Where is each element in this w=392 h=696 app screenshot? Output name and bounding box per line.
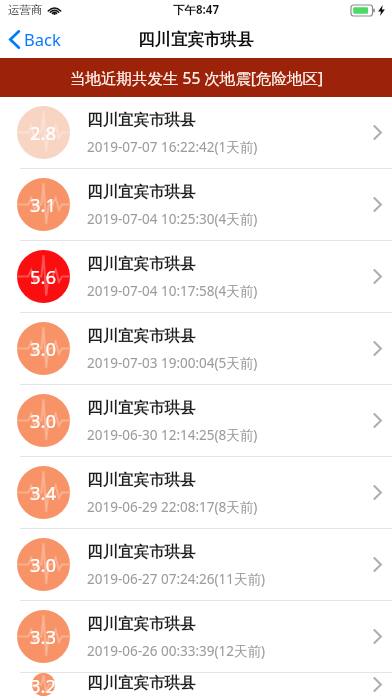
staticText: 2019-07-04 10:25:30(4天前)	[87, 210, 258, 228]
other: 查看详情	[362, 269, 392, 284]
staticText: Back	[24, 28, 61, 50]
staticText: 四川宜宾市珙县	[87, 182, 196, 202]
other: 查看详情	[362, 125, 392, 140]
staticText: 当地近期共发生 55 次地震[危险地区]	[70, 67, 323, 88]
staticText: 下午8:47	[173, 2, 219, 18]
staticText: 2.8	[30, 120, 57, 145]
staticText: 5.6	[30, 264, 57, 289]
other: 查看详情	[362, 629, 392, 644]
staticText: 四川宜宾市珙县	[138, 29, 254, 50]
staticText: 四川宜宾市珙县	[87, 673, 196, 693]
staticText: 四川宜宾市珙县	[87, 542, 196, 562]
staticText: 四川宜宾市珙县	[87, 398, 196, 418]
staticText: 3.0	[30, 336, 57, 361]
other: 查看详情	[362, 677, 392, 692]
staticText: 2019-07-03 19:00:04(5天前)	[87, 354, 258, 372]
staticText: 四川宜宾市珙县	[87, 326, 196, 346]
button[interactable]: 3.2	[0, 673, 392, 696]
other: 查看详情	[362, 485, 392, 500]
staticText: 3.3	[30, 624, 57, 649]
staticText: 四川宜宾市珙县	[87, 254, 196, 274]
staticText: 运营商	[8, 3, 43, 17]
button[interactable]: 3.1	[0, 169, 392, 241]
staticText: 2019-06-27 07:24:26(11天前)	[87, 570, 266, 588]
staticText: 四川宜宾市珙县	[87, 470, 196, 490]
button[interactable]: 2.8	[0, 97, 392, 169]
staticText: 3.4	[30, 480, 57, 505]
staticText: 2019-06-26 00:33:39(12天前)	[87, 642, 266, 660]
staticText: 3.0	[30, 552, 57, 577]
staticText: 四川宜宾市珙县	[87, 110, 196, 130]
other: 查看详情	[362, 341, 392, 356]
staticText: 2019-07-04 10:17:58(4天前)	[87, 282, 258, 300]
button[interactable]: Back	[0, 23, 73, 55]
button[interactable]: 3.3	[0, 601, 392, 673]
staticText: 3.1	[30, 192, 57, 217]
staticText: 3.2	[30, 673, 57, 696]
other: 查看详情	[362, 557, 392, 572]
button[interactable]: 3.4	[0, 457, 392, 529]
staticText: 2019-07-07 16:22:42(1天前)	[87, 138, 258, 156]
other: 查看详情	[362, 197, 392, 212]
button[interactable]: 5.6	[0, 241, 392, 313]
staticText: 3.0	[30, 408, 57, 433]
other: 查看详情	[362, 413, 392, 428]
staticText: 2019-06-29 22:08:17(8天前)	[87, 498, 258, 516]
staticText: 四川宜宾市珙县	[87, 614, 196, 634]
button[interactable]: 3.0	[0, 529, 392, 601]
button[interactable]: 3.0	[0, 313, 392, 385]
button[interactable]: 3.0	[0, 385, 392, 457]
staticText: 2019-06-30 12:14:25(8天前)	[87, 426, 258, 444]
